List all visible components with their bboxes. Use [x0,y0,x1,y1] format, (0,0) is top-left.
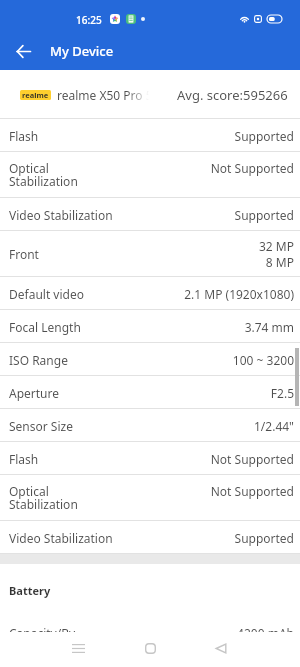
staticText: Default video [9,286,84,302]
staticText: Avg. score:595266 [177,86,288,104]
staticText: Not Supported [210,160,294,176]
staticText: ISO Range [9,352,68,368]
button[interactable]: Flash [0,119,300,152]
staticText: Optical Stabilization [9,483,78,513]
staticText: 16:25 [76,13,102,24]
staticText: Supported [234,128,294,144]
staticText: Capacity/By [9,625,76,641]
staticText: realme X50 Pro 5G [57,87,149,103]
button[interactable]: Back [208,635,234,661]
staticText: Not Supported [210,483,294,499]
button[interactable]: Optical Stabilization [0,152,300,198]
button[interactable]: Sensor Size [0,409,300,442]
staticText: Video Stabilization [9,530,113,546]
button[interactable]: Home [137,635,163,661]
button[interactable]: Capacity/By [0,616,300,649]
button[interactable]: Back [3,32,43,70]
button[interactable]: Focal Length [0,310,300,343]
staticText: F2.5 [270,385,294,401]
button[interactable]: Video Stabilization [0,198,300,231]
staticText: Front [9,246,39,262]
staticText: 100 ~ 3200 [232,352,294,368]
staticText: Focal Length [9,319,81,335]
button[interactable]: Default video [0,277,300,310]
staticText: 1/2.44" [253,418,294,434]
staticText: 3.74 mm [244,319,294,335]
staticText: 4200 mAh [237,625,294,641]
staticText: Battery [9,583,51,598]
button[interactable]: Flash [0,442,300,475]
staticText: Supported [234,530,294,546]
button[interactable]: Aperture [0,376,300,409]
staticText: Video Stabilization [9,207,113,223]
button[interactable]: ISO Range [0,343,300,376]
staticText: Flash [9,128,39,144]
staticText: Supported [234,207,294,223]
staticText: Not Supported [210,451,294,467]
staticText: Sensor Size [9,418,73,434]
staticText: 32 MP [259,238,294,254]
button[interactable]: Video Stabilization [0,521,300,554]
staticText: 2.1 MP (1920x1080) [184,286,294,302]
staticText: My Device [50,42,114,60]
button[interactable]: realme [0,70,300,119]
staticText: Flash [9,451,39,467]
staticText: Aperture [9,385,60,401]
button[interactable]: Recent apps [65,635,91,661]
staticText: Optical Stabilization [9,160,78,190]
staticText: realme [22,90,49,100]
button[interactable]: Optical Stabilization [0,475,300,521]
staticText: 8 MP [265,254,294,270]
button[interactable]: Front [0,231,300,277]
